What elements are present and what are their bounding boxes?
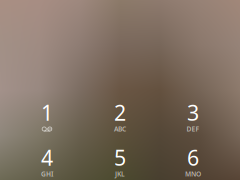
staticText: 1 [41, 98, 53, 127]
staticText: 2 [114, 98, 126, 127]
staticText: GHI [41, 170, 53, 178]
staticText: 5 [114, 143, 126, 172]
staticText: ABC [114, 125, 126, 133]
staticText: MNO [185, 170, 201, 178]
staticText: JKL [115, 170, 125, 178]
button[interactable]: 4 [10, 141, 83, 180]
button[interactable]: 5 [83, 141, 156, 180]
staticText: DEF [186, 125, 199, 133]
button[interactable]: 3 [156, 96, 229, 141]
staticText: 4 [41, 143, 53, 172]
button[interactable]: 2 [83, 96, 156, 141]
button[interactable]: 1 [10, 96, 83, 141]
staticText: 3 [187, 98, 199, 127]
button[interactable]: 6 [156, 141, 229, 180]
staticText: 6 [187, 143, 199, 172]
